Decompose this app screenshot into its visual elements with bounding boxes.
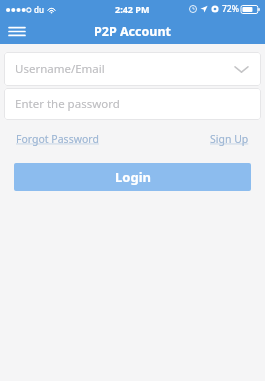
staticText: Forgot Password xyxy=(16,132,99,146)
button[interactable]: Open navigation menu xyxy=(0,18,34,44)
button[interactable]: Enter the password xyxy=(4,88,261,120)
button[interactable]: Sign Up xyxy=(210,130,249,148)
staticText: Username/Email xyxy=(15,61,232,77)
staticText: Sign Up xyxy=(210,132,249,146)
other: Show saved accounts xyxy=(232,60,250,78)
button[interactable]: Forgot Password xyxy=(16,130,99,148)
staticText: Enter the password xyxy=(15,96,120,112)
button[interactable]: Login xyxy=(14,163,251,191)
staticText: P2P Account xyxy=(94,23,171,40)
button[interactable]: Username/Email xyxy=(4,52,261,86)
staticText: 2:42 PM xyxy=(115,3,150,15)
staticText: 72% xyxy=(222,3,239,15)
staticText: Login xyxy=(115,168,151,186)
staticText: du xyxy=(34,4,44,15)
